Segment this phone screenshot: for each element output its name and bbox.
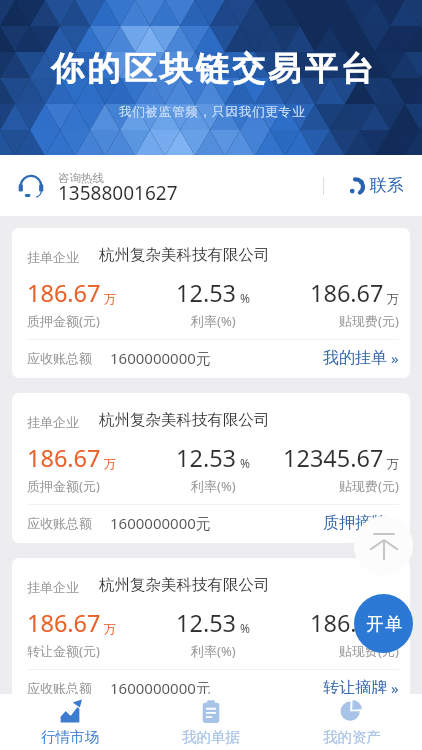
staticText: 质押金额(元) [27, 477, 100, 495]
staticText: 开单 [366, 613, 403, 635]
staticText: 186.67 [310, 607, 384, 639]
staticText: % [240, 455, 250, 471]
staticText: 应收账总额 [27, 350, 92, 366]
button[interactable]: 我的挂单 [323, 348, 399, 368]
staticText: 杭州复杂美科技有限公司 [99, 575, 270, 595]
staticText: % [240, 620, 250, 636]
staticText: 贴现费(元) [339, 312, 399, 330]
staticText: » [391, 348, 399, 368]
staticText: 我们被监管频，只因我们更专业 [119, 104, 306, 120]
staticText: 12.53 [176, 442, 237, 474]
staticText: 万 [104, 456, 116, 471]
button[interactable]: Scroll to top [354, 516, 413, 575]
staticText: 我的挂单 [323, 348, 387, 368]
staticText: % [240, 290, 250, 306]
staticText: 万 [104, 621, 116, 636]
staticText: 186.67 [310, 277, 384, 309]
staticText: 万 [387, 291, 399, 306]
staticText: 12.53 [176, 607, 237, 639]
button[interactable]: 我的单据 [140, 694, 281, 750]
button[interactable]: 挂单企业 [12, 393, 410, 543]
staticText: 186.67 [27, 277, 101, 309]
staticText: 挂单企业 [27, 414, 79, 430]
staticText: 利率(%) [191, 477, 236, 495]
staticText: 万 [387, 456, 399, 471]
staticText: 挂单企业 [27, 579, 79, 595]
staticText: 186.67 [27, 607, 101, 639]
button[interactable]: 挂单企业 [12, 558, 410, 708]
staticText: 1600000000元 [110, 513, 211, 533]
button[interactable]: 转让摘牌 [323, 678, 399, 698]
staticText: 12.53 [176, 277, 237, 309]
staticText: 杭州复杂美科技有限公司 [99, 245, 270, 265]
staticText: 应收账总额 [27, 680, 92, 696]
staticText: 联系 [370, 175, 404, 196]
staticText: 你的区块链交易平台 [51, 48, 377, 90]
staticText: 1600000000元 [110, 348, 211, 368]
staticText: 质押金额(元) [27, 312, 100, 330]
staticText: 贴现费(元) [339, 477, 399, 495]
staticText: 挂单企业 [27, 249, 79, 265]
staticText: 万 [104, 291, 116, 306]
staticText: 行情市场 [41, 728, 99, 746]
staticText: 我的单据 [182, 728, 240, 746]
staticText: 1600000000元 [110, 678, 211, 698]
staticText: 利率(%) [191, 312, 236, 330]
staticText: 应收账总额 [27, 515, 92, 531]
button[interactable]: 行情市场 [0, 694, 140, 750]
staticText: 质押摘牌 [323, 513, 387, 533]
staticText: 我的资产 [323, 728, 381, 746]
staticText: 12345.67 [283, 442, 384, 474]
button[interactable]: 挂单企业 [12, 228, 410, 378]
staticText: 利率(%) [191, 642, 236, 660]
staticText: 13588001627 [58, 180, 178, 206]
button[interactable]: 质押摘牌 [323, 513, 399, 533]
button[interactable]: 我的资产 [281, 694, 422, 750]
staticText: 贴现费(元) [339, 642, 399, 660]
staticText: 转让金额(元) [27, 642, 100, 660]
staticText: 咨询热线 [58, 171, 104, 185]
staticText: 杭州复杂美科技有限公司 [99, 410, 270, 430]
button[interactable]: 联系 [324, 167, 404, 204]
staticText: 万 [387, 621, 399, 636]
staticText: 186.67 [27, 442, 101, 474]
staticText: » [391, 678, 399, 698]
staticText: 转让摘牌 [323, 678, 387, 698]
button[interactable]: 开单 [354, 594, 413, 653]
